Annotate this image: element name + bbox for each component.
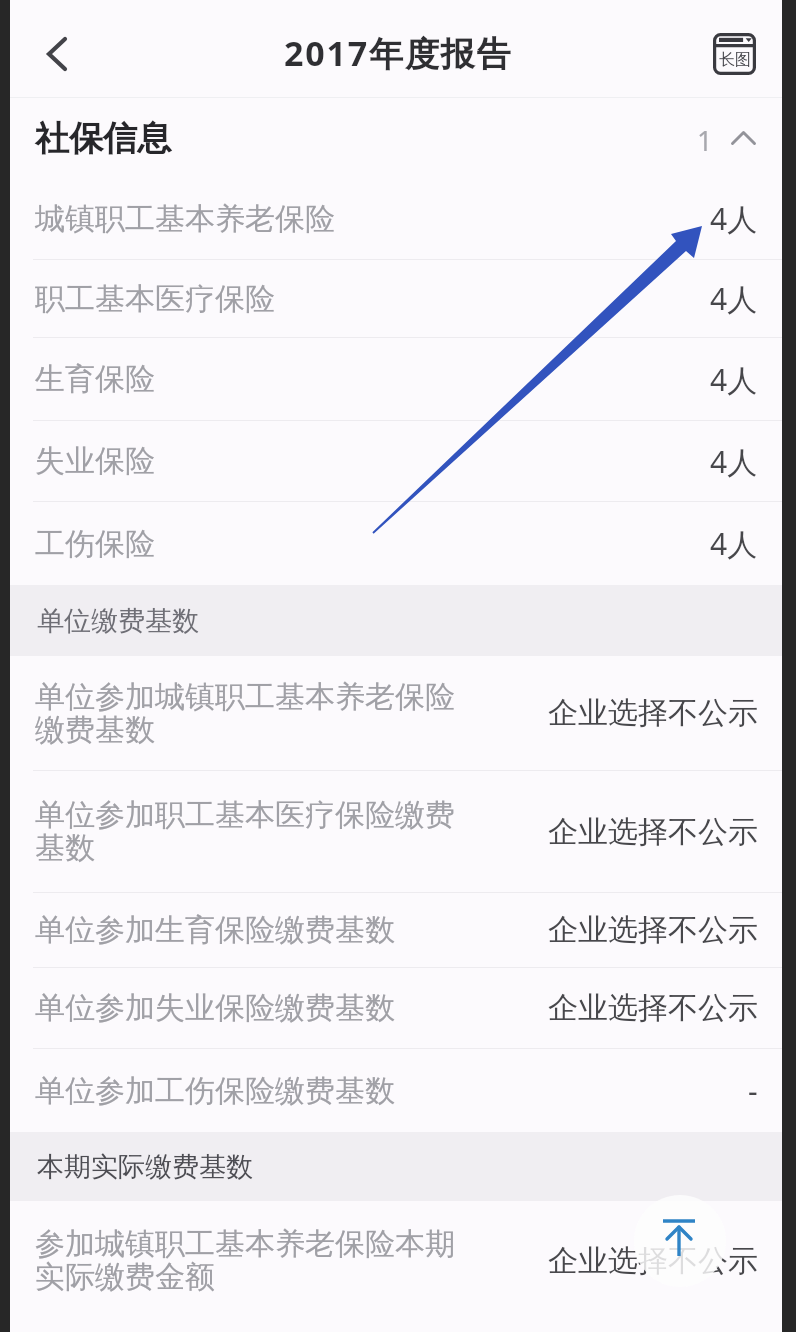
staticText: 职工基本医疗保险 — [35, 280, 275, 318]
button[interactable]: 城镇职工基本养老保险 — [10, 178, 782, 259]
staticText: 本期实际缴费基数 — [37, 1150, 253, 1184]
staticText: 企业选择不公示 — [548, 1242, 758, 1280]
staticText: 4人 — [710, 523, 758, 564]
button[interactable]: 单位参加失业保险缴费基数 — [10, 968, 782, 1048]
staticText: 单位参加职工基本医疗保险缴费 基数 — [35, 796, 455, 867]
button[interactable]: Back — [24, 22, 80, 78]
staticText: - — [748, 1070, 758, 1111]
staticText: 长图 — [719, 50, 751, 70]
staticText: 企业选择不公示 — [548, 813, 758, 851]
button[interactable]: 单位参加职工基本医疗保险缴费 基数 — [10, 771, 782, 892]
staticText: 4人 — [710, 359, 758, 400]
staticText: 单位缴费基数 — [37, 604, 199, 638]
staticText: 生育保险 — [35, 360, 155, 398]
button[interactable]: 单位参加生育保险缴费基数 — [10, 893, 782, 967]
staticText: 参加城镇职工基本养老保险本期 实际缴费金额 — [35, 1225, 455, 1296]
staticText: 1 — [697, 122, 713, 159]
button[interactable]: 失业保险 — [10, 421, 782, 501]
button[interactable]: Long screenshot — [703, 23, 765, 85]
staticText: 社保信息 — [35, 117, 171, 160]
button[interactable]: 参加城镇职工基本养老保险本期 实际缴费金额 — [10, 1201, 782, 1320]
staticText: 4人 — [710, 441, 758, 482]
button[interactable]: 单位参加城镇职工基本养老保险 缴费基数 — [10, 656, 782, 770]
staticText: 企业选择不公示 — [548, 989, 758, 1027]
staticText: 城镇职工基本养老保险 — [35, 200, 335, 238]
staticText: 企业选择不公示 — [548, 694, 758, 732]
staticText: 4人 — [710, 278, 758, 319]
button[interactable]: 生育保险 — [10, 338, 782, 420]
button[interactable]: Back to top — [634, 1195, 726, 1287]
staticText: 4人 — [710, 198, 758, 239]
staticText: 单位参加失业保险缴费基数 — [35, 989, 395, 1027]
button[interactable]: 单位参加工伤保险缴费基数 — [10, 1049, 782, 1132]
staticText: 2017年度报告 — [284, 30, 513, 76]
staticText: 失业保险 — [35, 442, 155, 480]
button[interactable]: 工伤保险 — [10, 502, 782, 585]
staticText: 单位参加城镇职工基本养老保险 缴费基数 — [35, 678, 455, 749]
staticText: 单位参加生育保险缴费基数 — [35, 911, 395, 949]
staticText: 企业选择不公示 — [548, 911, 758, 949]
staticText: 工伤保险 — [35, 525, 155, 563]
button[interactable]: 职工基本医疗保险 — [10, 260, 782, 337]
staticText: 单位参加工伤保险缴费基数 — [35, 1072, 395, 1110]
